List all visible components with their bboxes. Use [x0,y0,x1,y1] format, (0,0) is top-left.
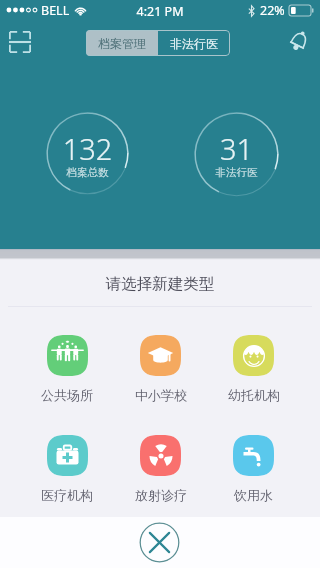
staticText: 132 [46,129,129,168]
button[interactable]: 幼托机构 [207,335,300,403]
staticText: 医疗机构 [41,487,93,503]
staticText: 公共场所 [41,387,93,403]
button[interactable]: 公共场所 [20,335,114,403]
staticText: 4:21 PM [0,3,320,20]
button[interactable]: 放射诊疗 [114,435,207,503]
button[interactable]: 饮用水 [207,435,300,503]
staticText: 档案管理 [98,36,146,51]
button[interactable]: Close [139,522,180,563]
button[interactable]: Notifications [285,27,313,55]
staticText: 非法行医 [194,166,279,179]
button[interactable]: 非法行医 [158,30,230,56]
button[interactable]: 医疗机构 [20,435,114,503]
staticText: 31 [194,129,279,168]
staticText: 档案总数 [46,166,129,179]
staticText: 请选择新建类型 [0,274,320,294]
staticText: 放射诊疗 [135,487,187,503]
button[interactable]: Scan [6,28,34,56]
staticText: 幼托机构 [228,387,280,403]
staticText: 非法行医 [170,36,218,51]
staticText: 22% [260,2,285,19]
staticText: 中小学校 [135,387,187,403]
staticText: 饮用水 [234,487,273,503]
button[interactable]: 档案管理 [86,30,158,56]
button[interactable]: 中小学校 [114,335,207,403]
staticText: BELL [41,2,70,19]
